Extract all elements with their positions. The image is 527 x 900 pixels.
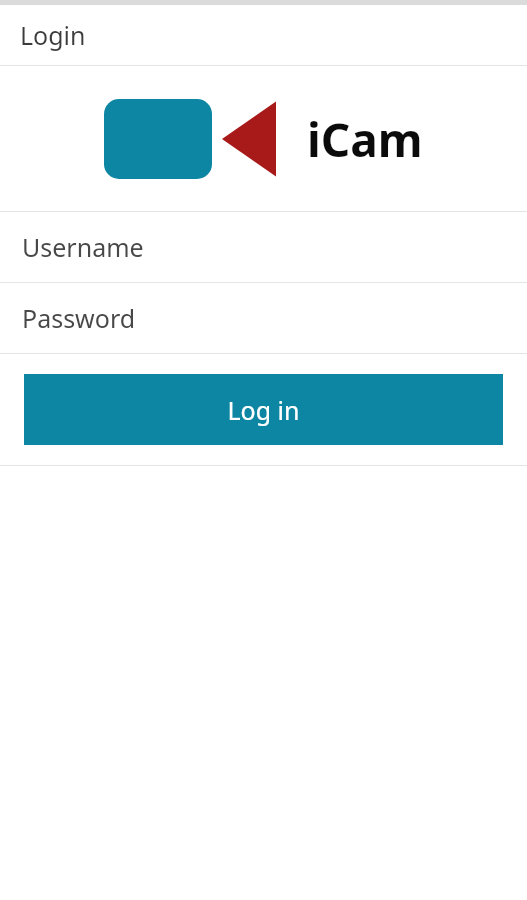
button[interactable]: Log in: [24, 374, 503, 445]
staticText: Password: [22, 301, 136, 335]
staticText: Login: [20, 18, 86, 52]
button[interactable]: Password: [0, 283, 527, 353]
staticText: Log in: [227, 393, 300, 427]
button[interactable]: Username: [0, 212, 527, 282]
other: iCam logo: [104, 99, 276, 179]
staticText: Username: [22, 230, 144, 264]
staticText: iCam: [307, 108, 423, 171]
